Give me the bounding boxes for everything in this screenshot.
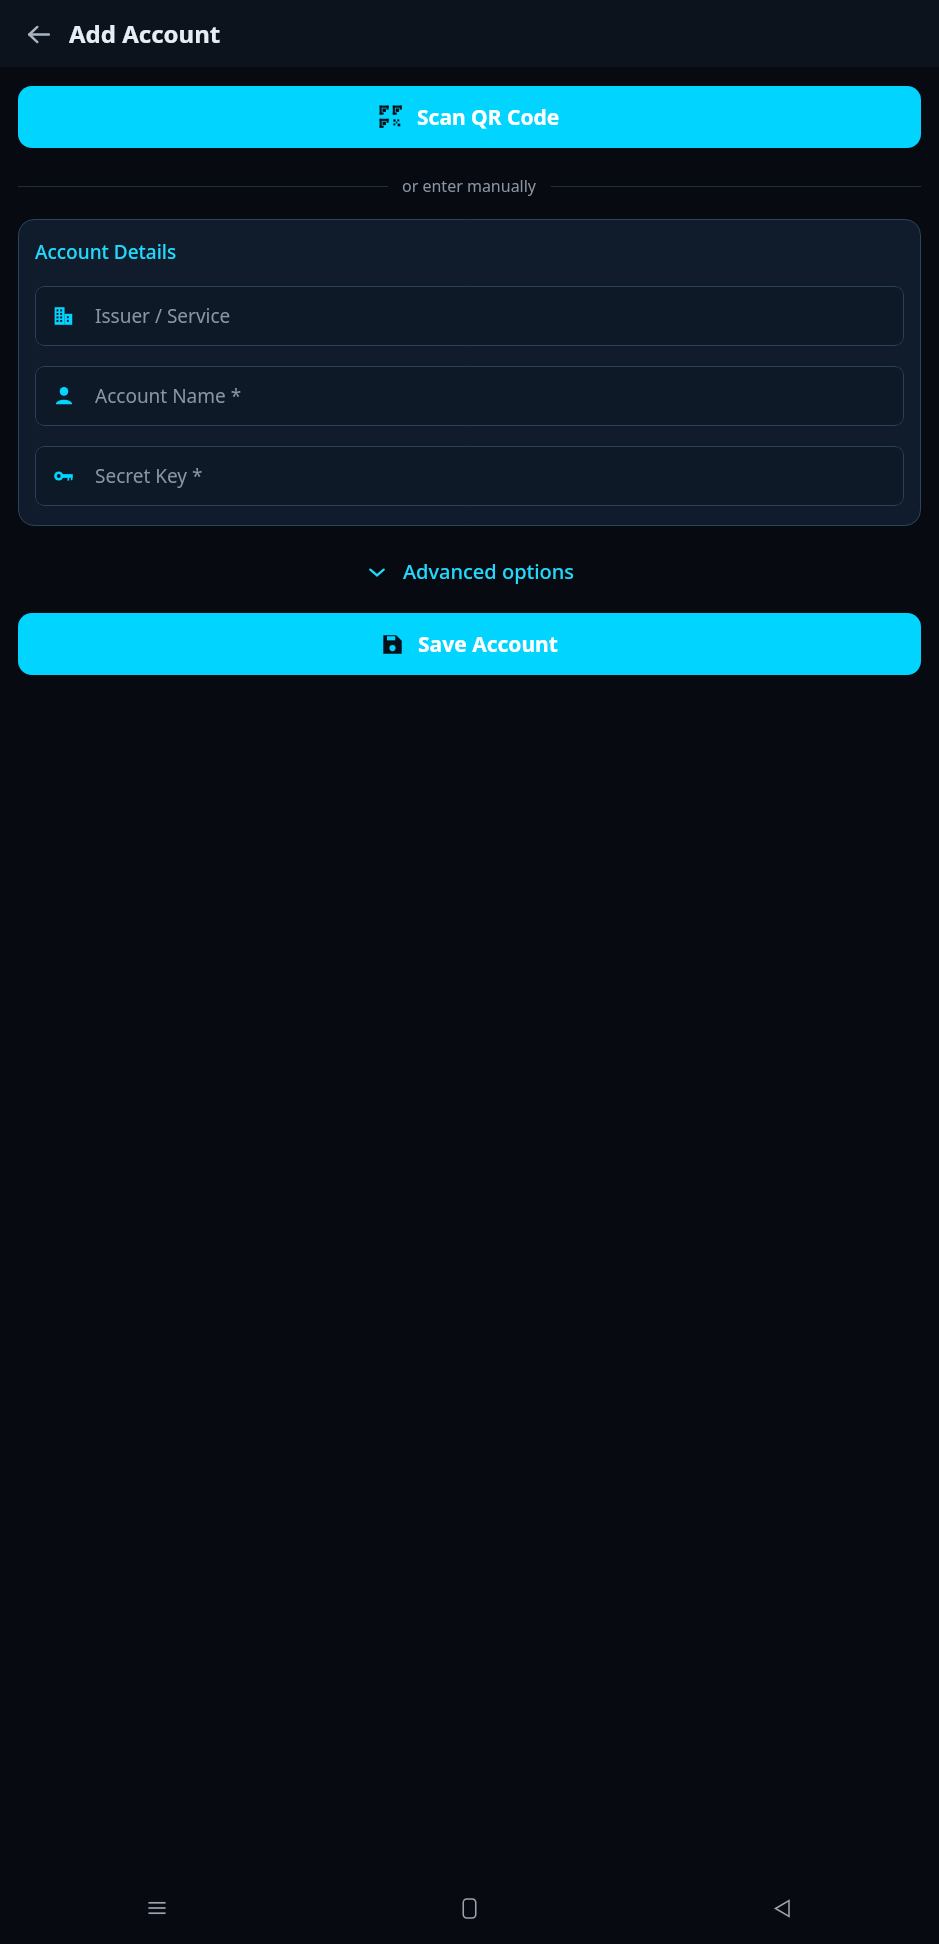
- staticText: Advanced options: [403, 558, 575, 585]
- button[interactable]: Secret Key *: [35, 446, 904, 506]
- button[interactable]: Account Name *: [35, 366, 904, 426]
- staticText: Issuer / Service: [95, 303, 231, 329]
- staticText: Add Account: [69, 17, 221, 50]
- button[interactable]: Save Account: [18, 613, 921, 675]
- button[interactable]: Back: [18, 14, 58, 54]
- staticText: Scan QR Code: [417, 103, 560, 132]
- button[interactable]: Issuer / Service: [35, 286, 904, 346]
- staticText: Save Account: [418, 630, 558, 659]
- button[interactable]: Back: [626, 1872, 939, 1944]
- staticText: Account Name *: [95, 383, 242, 409]
- button[interactable]: Recents: [0, 1872, 313, 1944]
- staticText: Account Details: [35, 239, 177, 265]
- button[interactable]: Advanced options: [0, 558, 939, 585]
- staticText: or enter manually: [402, 175, 537, 197]
- button[interactable]: Scan QR Code: [18, 86, 921, 148]
- button[interactable]: Home: [313, 1872, 626, 1944]
- staticText: Secret Key *: [95, 463, 203, 489]
